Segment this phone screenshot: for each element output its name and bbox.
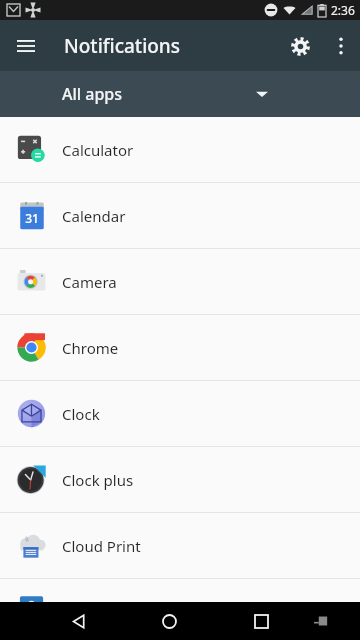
button[interactable]: Clock <box>0 381 360 446</box>
staticText: 31 <box>25 210 39 226</box>
button[interactable]: Clock plus <box>0 447 360 512</box>
staticText: Cloud Print <box>62 536 141 556</box>
button[interactable]: Chrome <box>0 315 360 380</box>
button[interactable]: 31 <box>0 183 360 248</box>
button[interactable]: Camera <box>0 249 360 314</box>
staticText: Calculator <box>62 140 134 160</box>
staticText: Notifications <box>64 33 181 59</box>
staticText: Clock plus <box>62 470 134 490</box>
button[interactable]: Back <box>60 602 98 640</box>
button[interactable]: Keyboard <box>306 606 336 636</box>
button[interactable]: All apps <box>0 71 360 117</box>
button[interactable]: Open navigation drawer <box>4 24 48 68</box>
button[interactable]: Home <box>150 602 188 640</box>
button[interactable]: Recent apps <box>242 602 280 640</box>
staticText: Calendar <box>62 206 126 226</box>
staticText: Chrome <box>62 338 119 358</box>
button[interactable]: More options <box>322 27 360 65</box>
staticText: Contacts <box>62 600 124 620</box>
button[interactable]: Settings <box>278 24 322 68</box>
staticText: All apps <box>62 83 123 105</box>
staticText: Clock <box>62 404 100 424</box>
button[interactable]: Calculator <box>0 117 360 182</box>
staticText: 2:36 <box>331 2 355 18</box>
button[interactable]: Contacts <box>0 579 360 640</box>
button[interactable]: Cloud Print <box>0 513 360 578</box>
staticText: Camera <box>62 272 117 292</box>
